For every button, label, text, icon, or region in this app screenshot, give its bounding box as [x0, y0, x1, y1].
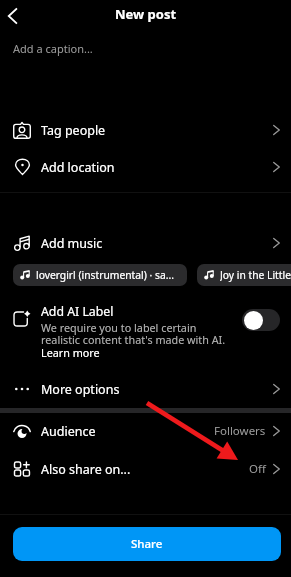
- button[interactable]: Add AI Label toggle: [242, 309, 280, 331]
- staticText: We require you to label certain realisti…: [41, 320, 226, 348]
- staticText: Also share on...: [41, 461, 131, 478]
- button[interactable]: Joy in the Little Things: [197, 264, 291, 286]
- button[interactable]: Tag people: [0, 114, 291, 146]
- button[interactable]: Add music: [0, 227, 291, 259]
- button[interactable]: Back: [0, 2, 30, 32]
- staticText: More options: [41, 381, 120, 398]
- button[interactable]: Audience: [0, 414, 291, 448]
- button[interactable]: Also share on...: [0, 452, 291, 486]
- staticText: lovergirl (instrumental) · sa...: [36, 268, 174, 282]
- staticText: Add location: [41, 159, 115, 176]
- staticText: Off: [249, 461, 266, 477]
- button[interactable]: Share: [13, 527, 281, 561]
- staticText: Learn more: [41, 345, 100, 358]
- staticText: Add music: [41, 235, 103, 252]
- staticText: New post: [115, 5, 177, 23]
- staticText: Add a caption...: [13, 41, 93, 56]
- staticText: Joy in the Little Things: [220, 268, 291, 282]
- button[interactable]: More options: [0, 373, 291, 405]
- button[interactable]: Add location: [0, 151, 291, 183]
- staticText: Tag people: [41, 122, 106, 139]
- staticText: Share: [131, 536, 163, 552]
- button[interactable]: Add AI Label: [0, 300, 291, 358]
- button[interactable]: lovergirl (instrumental) · sa...: [13, 264, 187, 286]
- staticText: Audience: [41, 423, 96, 440]
- staticText: Add AI Label: [41, 303, 114, 320]
- staticText: Followers: [214, 423, 266, 439]
